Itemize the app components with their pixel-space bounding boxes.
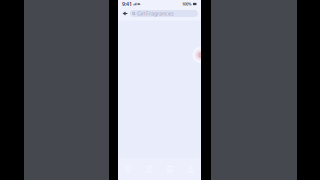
staticText: Girl Fragrances — [137, 10, 174, 17]
staticText: 100% — [182, 1, 192, 7]
staticText: 9:41 — [122, 0, 132, 8]
button[interactable]: Back — [121, 8, 130, 18]
button[interactable]: Girl Fragrances — [130, 10, 198, 17]
